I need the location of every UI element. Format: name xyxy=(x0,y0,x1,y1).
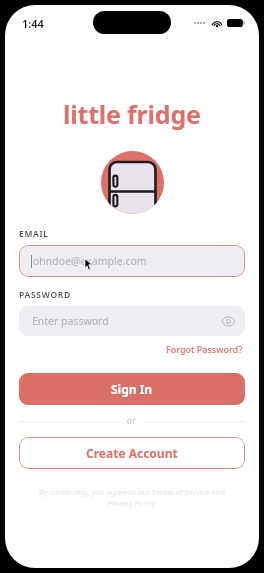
button[interactable]: Show password xyxy=(219,312,237,330)
button[interactable]: Sign In xyxy=(19,373,245,405)
staticText: Sign In xyxy=(111,381,153,397)
staticText: Create Account xyxy=(86,445,178,461)
button[interactable]: Enter password xyxy=(19,306,245,336)
staticText: Forgot Password? xyxy=(166,343,243,355)
staticText: PASSWORD xyxy=(19,289,71,301)
button[interactable]: Create Account xyxy=(19,437,245,469)
button[interactable]: Forgot Password? xyxy=(164,342,245,356)
staticText: EMAIL xyxy=(19,228,49,240)
staticText: 1:44 xyxy=(22,16,44,31)
staticText: Enter password xyxy=(32,314,109,328)
staticText: or xyxy=(127,415,136,427)
staticText: little fridge xyxy=(63,97,201,131)
staticText: ohndoe@example.com xyxy=(33,254,147,268)
button[interactable]: ohndoe@example.com xyxy=(19,245,245,277)
staticText: By continuing, you agree to our Terms of… xyxy=(31,487,233,508)
